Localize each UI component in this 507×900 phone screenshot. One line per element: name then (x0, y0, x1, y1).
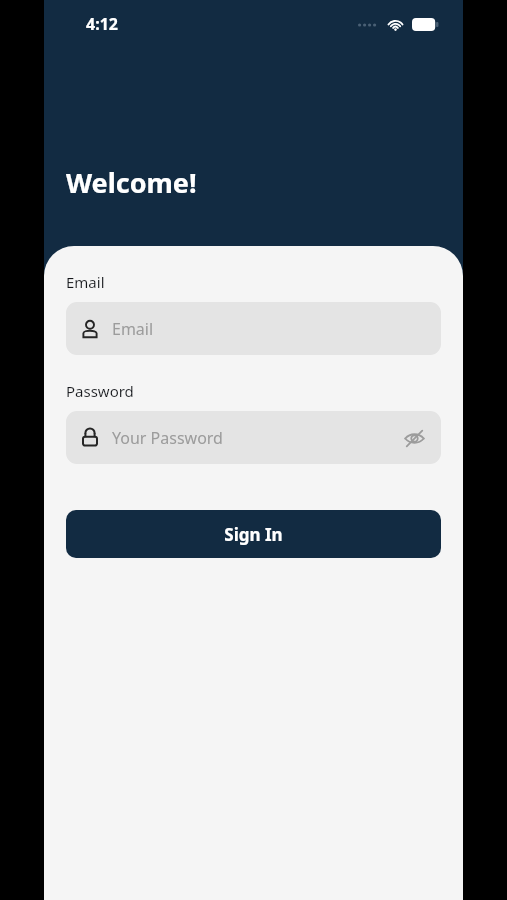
staticText: Your Password (112, 427, 223, 449)
staticText: 4:12 (86, 13, 118, 35)
button[interactable]: Your Password (66, 411, 441, 464)
staticText: Email (66, 272, 105, 292)
staticText: Email (112, 318, 154, 340)
staticText: Password (66, 381, 134, 401)
button[interactable]: Email (66, 302, 441, 355)
button[interactable]: Sign In (66, 510, 441, 558)
button[interactable]: Show password (397, 421, 431, 455)
staticText: Sign In (224, 523, 283, 546)
staticText: Welcome! (66, 164, 197, 201)
